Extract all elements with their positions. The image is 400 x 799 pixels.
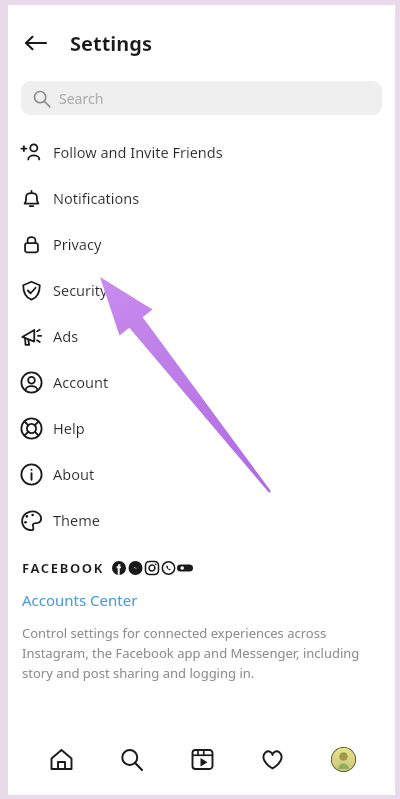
button[interactable]: Notifications xyxy=(8,175,395,221)
staticText: Ads xyxy=(53,326,79,346)
staticText: Settings xyxy=(70,30,152,57)
staticText: FACEBOOK xyxy=(22,559,104,577)
button[interactable]: Back xyxy=(16,23,56,63)
button[interactable]: Activity xyxy=(248,735,296,783)
button[interactable]: Security xyxy=(8,267,395,313)
button[interactable]: Search xyxy=(21,81,382,115)
button[interactable]: Profile xyxy=(319,735,367,783)
button[interactable]: Accounts Center xyxy=(22,590,138,610)
button[interactable]: Help xyxy=(8,405,395,451)
button[interactable]: Search xyxy=(107,735,155,783)
button[interactable]: Privacy xyxy=(8,221,395,267)
staticText: Notifications xyxy=(53,188,140,208)
button[interactable]: Theme xyxy=(8,497,395,543)
button[interactable]: Reels xyxy=(178,735,226,783)
staticText: Control settings for connected experienc… xyxy=(22,624,383,682)
staticText: Search xyxy=(59,89,104,108)
staticText: Theme xyxy=(53,510,100,530)
button[interactable]: About xyxy=(8,451,395,497)
staticText: Help xyxy=(53,418,85,438)
staticText: Security xyxy=(53,280,108,300)
button[interactable]: Ads xyxy=(8,313,395,359)
staticText: About xyxy=(53,464,95,484)
staticText: Account xyxy=(53,372,109,392)
button[interactable]: Home xyxy=(37,735,85,783)
button[interactable]: Follow and Invite Friends xyxy=(8,129,395,175)
button[interactable]: Account xyxy=(8,359,395,405)
staticText: Follow and Invite Friends xyxy=(53,142,223,162)
staticText: Privacy xyxy=(53,234,102,254)
